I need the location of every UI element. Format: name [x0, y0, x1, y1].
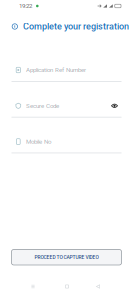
staticText: Complete your registration	[23, 21, 129, 32]
button[interactable]: Secure Code	[11, 101, 121, 117]
button[interactable]: Mobile No	[11, 137, 121, 153]
staticText: Secure Code	[26, 102, 59, 109]
button[interactable]: PROCEED TO CAPTURE VIDEO	[11, 249, 121, 265]
staticText: 19:22	[19, 2, 32, 10]
button[interactable]: Back	[84, 280, 112, 293]
staticText: Mobile No	[26, 138, 51, 145]
button[interactable]: Recent apps	[16, 280, 50, 293]
button[interactable]: Information	[0, 21, 20, 32]
button[interactable]: Application Ref Number	[11, 65, 121, 82]
button[interactable]: Home	[50, 280, 84, 293]
staticText: PROCEED TO CAPTURE VIDEO	[34, 254, 98, 260]
staticText: Application Ref Number	[26, 66, 86, 74]
